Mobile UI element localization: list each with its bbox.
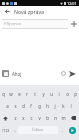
button[interactable]: o: [63, 88, 71, 100]
staticText: c: [30, 115, 33, 121]
button[interactable]: p: [71, 88, 79, 100]
staticText: ?123: [2, 128, 10, 133]
button[interactable]: shift: [0, 112, 11, 124]
button[interactable]: e: [15, 88, 23, 100]
button[interactable]: u: [47, 88, 55, 100]
staticText: f: [30, 103, 32, 109]
button[interactable]: s: [11, 100, 19, 112]
button[interactable]: Send message: [68, 69, 77, 78]
button[interactable]: m: [59, 112, 67, 124]
button[interactable]: v: [35, 112, 43, 124]
staticText: q: [2, 91, 5, 97]
button[interactable]: Space: [18, 126, 58, 134]
staticText: w: [9, 91, 13, 97]
staticText: .: [61, 127, 63, 133]
staticText: 12:01: [67, 1, 77, 6]
button[interactable]: l: [67, 100, 75, 112]
button[interactable]: ,: [12, 124, 18, 136]
staticText: h: [46, 103, 49, 109]
button[interactable]: f: [27, 100, 35, 112]
staticText: l: [70, 103, 72, 109]
button[interactable]: d: [19, 100, 27, 112]
button[interactable]: a: [4, 100, 11, 112]
staticText: j: [54, 103, 56, 109]
button[interactable]: y: [39, 88, 47, 100]
button[interactable]: c: [27, 112, 35, 124]
staticText: i: [58, 91, 60, 97]
staticText: Nová zpráva: [14, 8, 44, 15]
staticText: u: [50, 91, 53, 97]
staticText: g: [38, 103, 41, 109]
staticText: r: [26, 91, 28, 97]
button[interactable]: k: [59, 100, 67, 112]
button[interactable]: h: [43, 100, 51, 112]
staticText: b: [46, 115, 49, 121]
button[interactable]: ?123: [0, 124, 12, 136]
button[interactable]: .: [58, 124, 66, 136]
staticText: a: [6, 103, 9, 109]
button[interactable]: Back: [0, 6, 14, 17]
button[interactable]: Add recipient: [68, 18, 79, 30]
staticText: z: [14, 115, 17, 121]
staticText: y: [42, 91, 45, 97]
button[interactable]: z: [11, 112, 19, 124]
button[interactable]: q: [0, 88, 7, 100]
staticText: v: [38, 115, 41, 121]
button[interactable]: Attach: [59, 68, 67, 79]
staticText: Ahoj: [12, 71, 22, 77]
button[interactable]: x: [19, 112, 27, 124]
button[interactable]: Send: [69, 127, 76, 134]
staticText: d: [22, 103, 25, 109]
button[interactable]: r: [23, 88, 31, 100]
staticText: n: [54, 115, 57, 121]
button[interactable]: j: [51, 100, 59, 112]
staticText: Čeština: [32, 128, 44, 132]
button[interactable]: g: [35, 100, 43, 112]
button[interactable]: t: [31, 88, 39, 100]
staticText: k: [62, 103, 65, 109]
staticText: t: [34, 91, 36, 97]
staticText: e: [18, 91, 21, 97]
button[interactable]: i: [55, 88, 63, 100]
button[interactable]: w: [7, 88, 15, 100]
staticText: ,: [14, 127, 16, 133]
button[interactable]: Emoji: [2, 70, 9, 77]
staticText: x: [22, 115, 25, 121]
button[interactable]: Backspace: [67, 112, 79, 124]
button[interactable]: Příjemce: [2, 19, 68, 29]
staticText: Příjemce: [4, 21, 22, 27]
staticText: s: [14, 103, 17, 109]
staticText: p: [74, 91, 77, 97]
staticText: o: [66, 91, 69, 97]
button[interactable]: b: [43, 112, 51, 124]
staticText: m: [61, 115, 66, 121]
button[interactable]: n: [51, 112, 59, 124]
